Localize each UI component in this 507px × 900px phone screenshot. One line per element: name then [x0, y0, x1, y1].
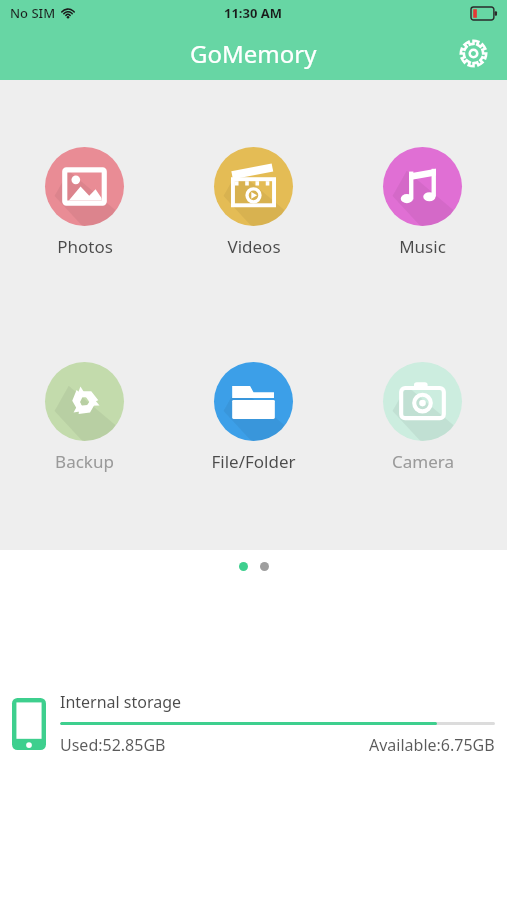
- staticText: GoMemory: [190, 37, 317, 70]
- button[interactable]: Backup: [0, 360, 169, 475]
- button[interactable]: File/Folder: [169, 360, 338, 475]
- staticText: Used:52.85GB: [60, 734, 166, 756]
- staticText: File/Folder: [211, 450, 296, 473]
- button[interactable]: Camera: [338, 360, 507, 475]
- button[interactable]: Settings: [451, 31, 495, 75]
- staticText: Camera: [392, 450, 454, 473]
- button[interactable]: Music: [338, 145, 507, 260]
- staticText: 11:30 AM: [224, 4, 283, 22]
- button[interactable]: Videos: [169, 145, 338, 260]
- staticText: No SIM: [10, 4, 56, 22]
- staticText: Music: [399, 235, 446, 258]
- button[interactable]: Internal storage: [0, 687, 507, 760]
- button[interactable]: Photos: [0, 145, 169, 260]
- staticText: Backup: [55, 450, 114, 473]
- staticText: Available:6.75GB: [369, 734, 495, 756]
- staticText: Videos: [227, 235, 281, 258]
- staticText: Photos: [57, 235, 113, 258]
- staticText: Internal storage: [60, 691, 182, 713]
